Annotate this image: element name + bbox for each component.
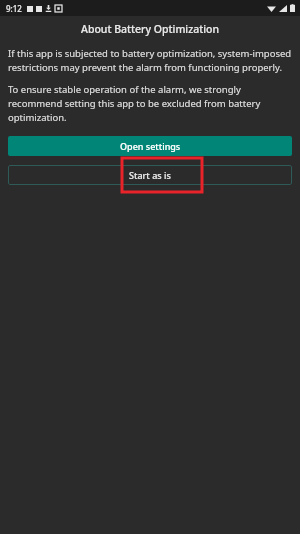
staticText: 9:12 bbox=[6, 3, 22, 14]
other: Notification bbox=[55, 5, 62, 12]
other: Battery bbox=[290, 4, 295, 12]
other: Wi-Fi bbox=[267, 5, 276, 12]
staticText: Open settings bbox=[120, 140, 181, 152]
staticText: About Battery Optimization bbox=[81, 22, 220, 36]
button[interactable]: Open settings bbox=[8, 136, 292, 156]
staticText: To ensure stable operation of the alarm,… bbox=[8, 83, 292, 124]
staticText: If this app is subjected to battery opti… bbox=[8, 47, 292, 74]
other: Download bbox=[45, 5, 52, 12]
button[interactable]: Start as is bbox=[8, 165, 292, 185]
other: Cellular signal bbox=[279, 5, 287, 12]
staticText: Start as is bbox=[129, 169, 171, 181]
